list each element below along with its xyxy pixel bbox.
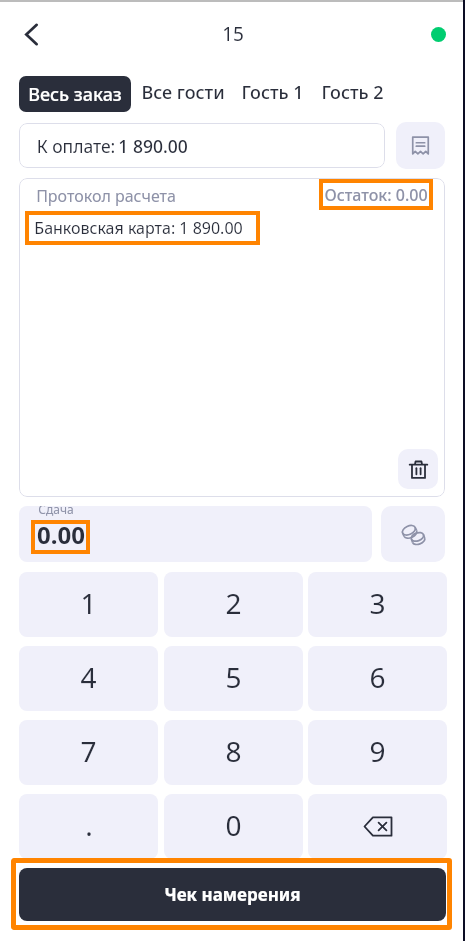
staticText: Протокол расчета [36,185,176,207]
button[interactable]: К оплате: [19,123,385,168]
button[interactable]: Delete [398,449,438,489]
button[interactable]: Back [9,12,53,56]
staticText: 0 [225,806,242,844]
staticText: 6 [369,658,386,696]
button[interactable]: 6 [308,646,447,711]
staticText: К оплате: [34,134,118,158]
button[interactable]: 0 [164,794,303,859]
staticText: 3 [369,584,386,622]
button[interactable]: Остаток: 0.00 [319,179,433,210]
button[interactable]: 5 [164,646,303,711]
button[interactable]: 2 [164,572,303,637]
button[interactable]: Гость 1 [240,74,304,110]
staticText: . [85,806,93,844]
staticText: Весь заказ [28,82,122,107]
staticText: Гость 2 [321,80,384,105]
button[interactable] [308,794,447,859]
staticText: 7 [80,732,97,770]
staticText: 1 [80,584,97,622]
button[interactable]: 4 [19,646,158,711]
button[interactable]: 7 [19,720,158,785]
staticText: 4 [80,658,97,696]
button[interactable]: Чек намерения [19,868,446,921]
button[interactable]: Receipt [396,122,445,169]
staticText: Остаток: 0.00 [324,184,428,206]
button[interactable]: 3 [308,572,447,637]
staticText: Банковская карта: 1 890.00 [34,217,243,239]
staticText: Чек намерения [164,883,301,906]
staticText: 0.00 [37,518,85,551]
button[interactable]: 8 [164,720,303,785]
staticText: 9 [369,732,386,770]
staticText: 15 [222,21,244,47]
staticText: 2 [225,584,242,622]
button[interactable]: Гость 2 [320,74,384,110]
button[interactable]: 9 [308,720,447,785]
staticText: 5 [225,658,242,696]
staticText: Все гости [141,80,225,105]
staticText: Гость 1 [241,80,304,105]
button[interactable]: Все гости [141,74,225,110]
staticText: 8 [225,732,242,770]
staticText: 1 890.00 [118,134,188,158]
button[interactable]: Coins [381,506,445,562]
button[interactable]: Сдача [19,506,372,562]
button[interactable]: . [19,794,158,859]
staticText: Сдача [38,506,74,517]
button[interactable]: Банковская карта: 1 890.00 [25,211,260,245]
button[interactable]: Online status [431,27,446,42]
button[interactable]: 1 [19,572,158,637]
button[interactable]: Весь заказ [19,76,131,112]
